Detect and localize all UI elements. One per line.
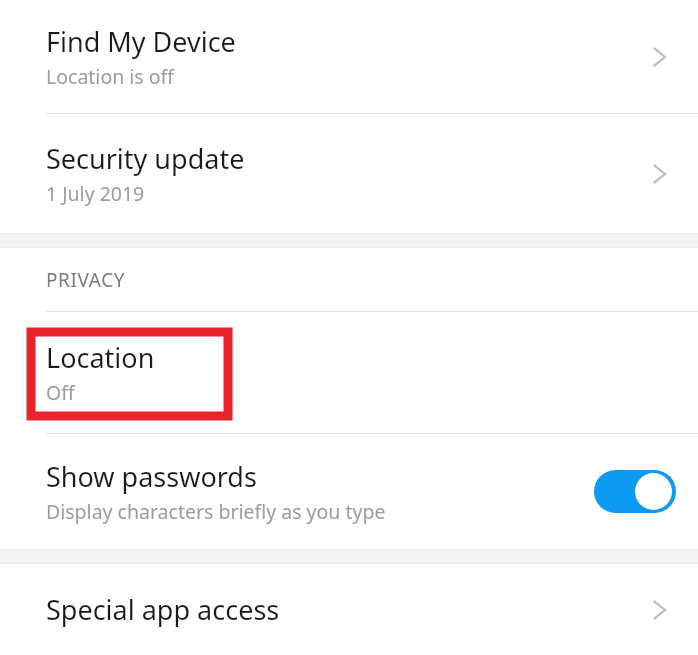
staticText: Location is off (46, 63, 174, 90)
staticText: 1 July 2019 (46, 180, 145, 207)
button[interactable]: Security update (0, 114, 698, 233)
button[interactable]: Show passwords (0, 434, 698, 549)
staticText: Special app access (46, 591, 280, 628)
staticText: Find My Device (46, 23, 236, 60)
staticText: PRIVACY (46, 267, 126, 293)
button[interactable]: Show passwords toggle, on (594, 470, 676, 513)
button[interactable]: Find My Device (0, 0, 698, 113)
button[interactable]: Location (0, 312, 698, 433)
staticText: Show passwords (46, 458, 257, 495)
staticText: Security update (46, 140, 245, 177)
staticText: Display characters briefly as you type (46, 498, 386, 525)
button[interactable]: Special app access (0, 564, 698, 655)
staticText: Location (46, 339, 155, 376)
staticText: Off (46, 379, 75, 406)
